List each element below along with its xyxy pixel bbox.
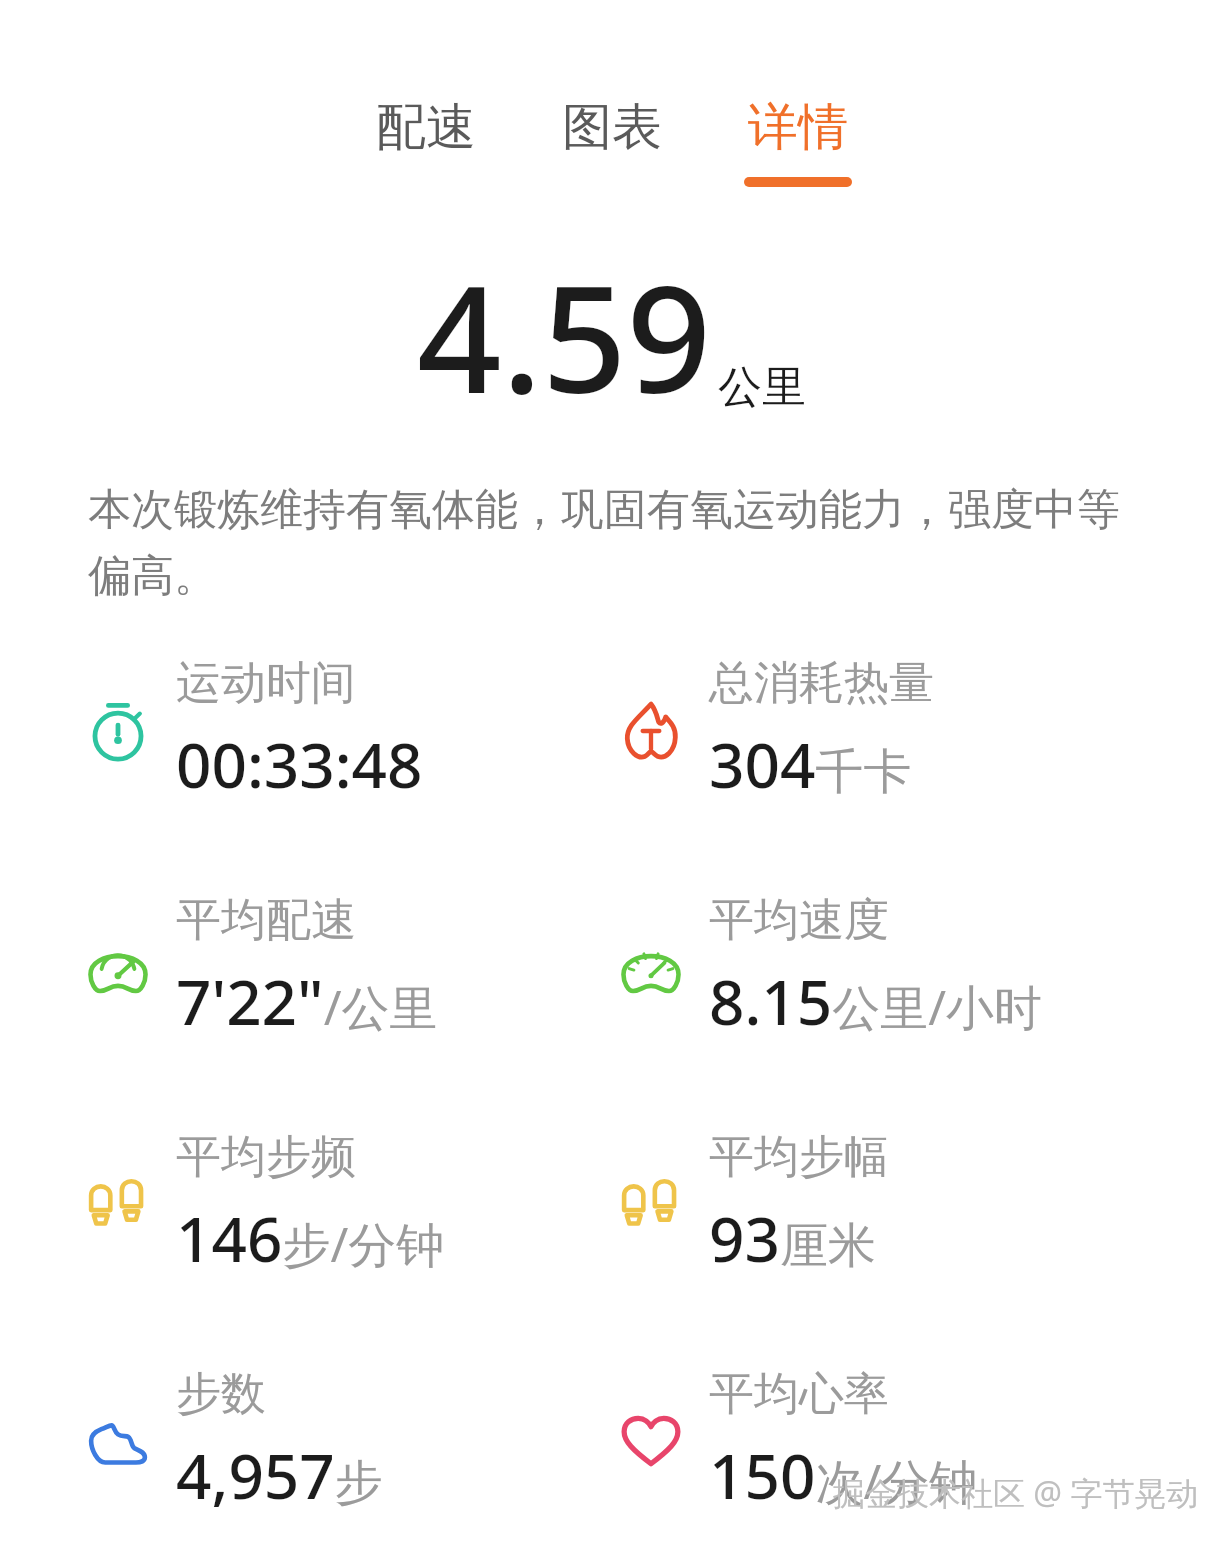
staticText: 93厘米 [709,1196,876,1280]
staticText: 公里 [718,360,806,415]
staticText: 平均速度 [709,892,889,949]
staticText: 配速 [376,96,476,159]
other: Average stride [619,1173,683,1237]
button[interactable]: 详情 [734,96,862,187]
staticText: 平均心率 [709,1366,889,1423]
button[interactable]: Duration [0,655,611,806]
button[interactable]: Calories [611,655,1223,806]
staticText: 146步/分钟 [176,1196,445,1280]
staticText: 总消耗热量 [709,655,934,712]
button[interactable]: Steps [0,1366,611,1517]
other: Steps [86,1410,150,1474]
staticText: 本次锻炼维持有氧体能，巩固有氧运动能力，强度中等偏高。 [88,483,1123,603]
staticText: 平均步频 [176,1129,356,1186]
other: Average speed [619,936,683,1000]
staticText: 4.59 [417,235,712,437]
staticText: 4,957步 [176,1433,383,1517]
staticText: 00:33:48 [176,722,423,806]
button[interactable]: Average stride [611,1129,1223,1280]
button[interactable]: 配速 [362,96,490,187]
staticText: 304千卡 [709,722,912,806]
staticText: 详情 [748,96,848,159]
staticText: 步数 [176,1366,266,1423]
staticText: 运动时间 [176,655,356,712]
other: Average cadence [86,1173,150,1237]
button[interactable]: Average heart rate [611,1366,1223,1517]
other: Average heart rate [619,1410,683,1474]
staticText: 150次/分钟 [709,1433,978,1517]
staticText: 8.15公里/小时 [709,959,1043,1043]
button[interactable]: 图表 [548,96,676,187]
other: Average pace [86,936,150,1000]
staticText: 7'22"/公里 [176,959,438,1043]
button[interactable]: Average pace [0,892,611,1043]
staticText: 平均步幅 [709,1129,889,1186]
other: Calories [619,699,683,763]
staticText: 掘金技术社区 @ 字节晃动 [833,1471,1199,1515]
button[interactable]: Average cadence [0,1129,611,1280]
staticText: 图表 [562,96,662,159]
other: Duration [86,699,150,763]
staticText: 平均配速 [176,892,356,949]
button[interactable]: Average speed [611,892,1223,1043]
